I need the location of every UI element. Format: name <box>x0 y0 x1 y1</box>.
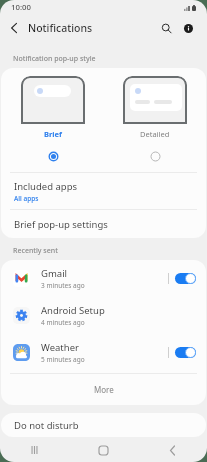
staticText: Notifications <box>28 21 93 35</box>
button[interactable]: Info <box>176 16 201 40</box>
staticText: Detailed <box>140 129 170 139</box>
button[interactable]: Included apps <box>1 173 206 209</box>
button[interactable]: Home <box>69 439 138 461</box>
staticText: Brief <box>44 129 62 139</box>
staticText: Included apps <box>14 180 78 193</box>
staticText: Android Setup <box>41 304 105 317</box>
button[interactable]: Do not disturb <box>1 413 206 437</box>
button[interactable]: Recents <box>0 439 69 461</box>
button[interactable]: Brief <box>21 76 85 162</box>
staticText: 5 minutes ago <box>41 355 85 364</box>
button[interactable]: Weather <box>1 334 206 371</box>
staticText: Gmail <box>41 267 68 280</box>
staticText: Weather <box>41 341 79 354</box>
staticText: Do not disturb <box>14 419 79 432</box>
staticText: All apps <box>14 194 39 203</box>
button[interactable]: Back <box>0 16 27 40</box>
button[interactable]: Detailed <box>123 76 187 162</box>
button[interactable]: Android Setup <box>1 297 206 334</box>
button[interactable]: Search <box>156 16 176 40</box>
button[interactable]: Toggle Gmail <box>175 273 196 284</box>
staticText: 10:00 <box>11 2 31 13</box>
staticText: 4 minutes ago <box>41 318 85 327</box>
button[interactable]: Gmail <box>1 260 206 297</box>
staticText: Notification pop-up style <box>13 54 96 64</box>
button[interactable]: More <box>1 374 206 405</box>
staticText: Brief pop-up settings <box>14 218 108 231</box>
staticText: Recently sent <box>13 246 58 256</box>
button[interactable]: Toggle Weather <box>175 347 196 358</box>
staticText: More <box>94 384 114 395</box>
button[interactable]: Back <box>138 439 207 461</box>
staticText: 3 minutes ago <box>41 281 85 290</box>
button[interactable]: Brief pop-up settings <box>1 210 206 238</box>
